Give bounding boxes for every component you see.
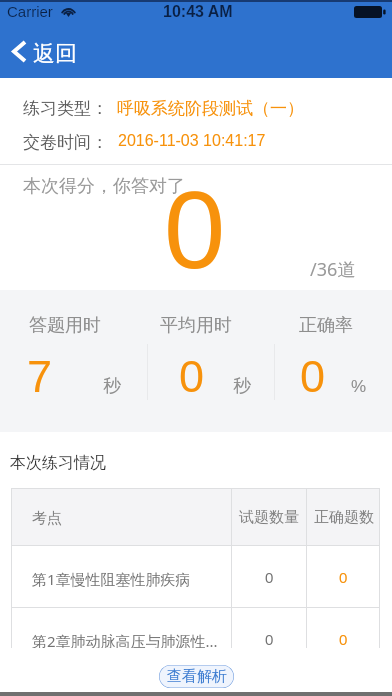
staticText: 2016-11-03 10:41:17 <box>118 132 266 150</box>
staticText: 秒 <box>233 375 251 398</box>
button[interactable]: 第2章肺动脉高压与肺源性... <box>11 608 380 670</box>
staticText: 0 <box>179 351 205 401</box>
staticText: 本次练习情况 <box>10 453 106 473</box>
staticText: 考点 <box>32 509 62 528</box>
button[interactable]: 第1章慢性阻塞性肺疾病 <box>11 546 380 608</box>
staticText: 0 <box>339 631 348 648</box>
staticText: 秒 <box>103 375 121 398</box>
staticText: 练习类型： <box>23 98 108 119</box>
staticText: Carrier <box>7 3 53 20</box>
staticText: 10:43 AM <box>163 3 233 21</box>
button[interactable]: 返回 <box>0 22 66 78</box>
staticText: 第2章肺动脉高压与肺源性... <box>32 631 218 651</box>
staticText: 正确题数 <box>314 508 374 527</box>
staticText: 0 <box>300 351 326 401</box>
other: Wi-Fi <box>61 5 76 17</box>
staticText: 正确率 <box>299 314 353 337</box>
staticText: 答题用时 <box>29 314 101 337</box>
staticText: /36道 <box>310 257 356 282</box>
staticText: 第1章慢性阻塞性肺疾病 <box>32 569 191 589</box>
staticText: 0 <box>265 631 274 648</box>
staticText: 查看解析 <box>167 667 227 686</box>
staticText: 呼吸系统阶段测试（一） <box>117 98 304 119</box>
staticText: 平均用时 <box>160 314 232 337</box>
staticText: 返回 <box>33 40 77 68</box>
staticText: 0 <box>339 569 348 586</box>
staticText: 7 <box>27 351 53 401</box>
button[interactable]: 查看解析 <box>159 665 234 688</box>
staticText: 0 <box>164 168 226 291</box>
staticText: 0 <box>265 569 274 586</box>
staticText: 本次得分，你答对了 <box>23 175 185 198</box>
staticText: 试题数量 <box>239 508 299 527</box>
staticText: % <box>351 377 367 396</box>
staticText: 交卷时间： <box>23 132 108 153</box>
